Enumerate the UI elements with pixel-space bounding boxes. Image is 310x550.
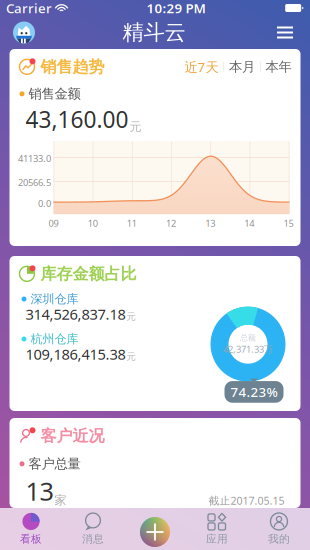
staticText: 元 bbox=[126, 351, 135, 362]
staticText: 15 bbox=[283, 217, 293, 229]
staticText: 本月 bbox=[229, 59, 255, 75]
staticText: 元 bbox=[129, 119, 141, 134]
staticText: 42,371.33万 bbox=[223, 343, 273, 355]
staticText: 09 bbox=[48, 217, 58, 229]
button[interactable]: 本年 bbox=[265, 59, 291, 75]
staticText: 41133.0 bbox=[18, 152, 51, 164]
staticText: 10:29 PM bbox=[147, 0, 206, 17]
staticText: 314,526,837.18 bbox=[25, 304, 125, 324]
staticText: 元 bbox=[126, 311, 135, 322]
staticText: 本年 bbox=[265, 59, 291, 75]
button[interactable]: 消息 bbox=[62, 508, 124, 550]
staticText: 0.0 bbox=[38, 197, 51, 209]
staticText: 10 bbox=[88, 217, 98, 229]
staticText: 精斗云 bbox=[122, 19, 185, 46]
staticText: 14 bbox=[244, 217, 254, 229]
staticText: 深圳仓库 bbox=[30, 292, 78, 306]
staticText: 销售金额 bbox=[28, 86, 80, 102]
staticText: 销售趋势 bbox=[40, 57, 104, 77]
button[interactable]: Profile bbox=[8, 16, 40, 48]
staticText: 12 bbox=[166, 217, 176, 229]
button[interactable]: 看板 bbox=[0, 508, 62, 550]
staticText: 74.23% bbox=[230, 383, 277, 401]
staticText: 总额 bbox=[240, 333, 256, 343]
button[interactable]: 近7天 bbox=[184, 58, 218, 76]
button[interactable]: 我的 bbox=[248, 508, 310, 550]
staticText: 43,160.00 bbox=[25, 104, 128, 134]
staticText: 消息 bbox=[82, 532, 104, 545]
staticText: 应用 bbox=[206, 532, 228, 545]
staticText: 截止2017.05.15 bbox=[208, 493, 284, 508]
staticText: 近7天 bbox=[184, 58, 218, 76]
staticText: 我的 bbox=[268, 532, 290, 545]
staticText: 客户近况 bbox=[40, 426, 104, 446]
staticText: Carrier bbox=[6, 0, 52, 17]
staticText: 13 bbox=[25, 474, 53, 508]
staticText: 11 bbox=[127, 217, 137, 229]
staticText: 看板 bbox=[20, 532, 42, 545]
staticText: 库存金额占比 bbox=[40, 264, 136, 284]
staticText: 杭州仓库 bbox=[30, 332, 78, 346]
staticText: 13 bbox=[205, 217, 215, 229]
staticText: 109,186,415.38 bbox=[25, 344, 125, 364]
button[interactable]: Menu bbox=[268, 15, 302, 49]
staticText: 客户总量 bbox=[28, 456, 80, 472]
staticText: 20566.5 bbox=[18, 176, 51, 188]
button[interactable]: 应用 bbox=[186, 508, 248, 550]
button[interactable]: 本月 bbox=[229, 59, 255, 75]
button[interactable]: New bbox=[134, 511, 176, 550]
staticText: 家 bbox=[54, 493, 66, 508]
